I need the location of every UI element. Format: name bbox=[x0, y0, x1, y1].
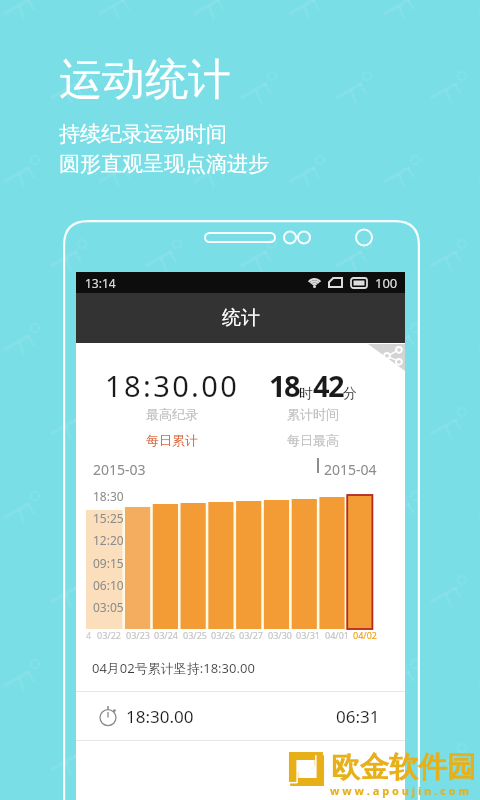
staticText: 03/23 bbox=[126, 629, 150, 641]
staticText: 15:25 bbox=[93, 510, 124, 526]
staticText: 04/01 bbox=[325, 629, 349, 641]
staticText: 03/27 bbox=[239, 629, 263, 641]
staticText: 累计时间 bbox=[287, 406, 339, 422]
staticText: 欧金软件园 bbox=[331, 749, 476, 786]
staticText: 2015-03 bbox=[93, 460, 146, 479]
staticText: 每日累计 bbox=[146, 432, 198, 448]
staticText: 13:14 bbox=[85, 275, 116, 291]
staticText: 运动统计 bbox=[59, 53, 231, 107]
staticText: 圆形直观呈现点滴进步 bbox=[59, 151, 269, 177]
staticText: 4 bbox=[86, 629, 92, 641]
staticText: 18 bbox=[269, 366, 299, 405]
staticText: 42 bbox=[313, 366, 343, 405]
staticText: 03/30 bbox=[268, 629, 292, 641]
staticText: 12:20 bbox=[93, 532, 124, 548]
staticText: 03/22 bbox=[97, 629, 121, 641]
staticText: 03/31 bbox=[296, 629, 320, 641]
staticText: 03/26 bbox=[211, 629, 235, 641]
staticText: 09:15 bbox=[93, 555, 124, 571]
staticText: 最高纪录 bbox=[146, 406, 198, 422]
staticText: 分 bbox=[343, 385, 357, 403]
staticText: 06:31 bbox=[336, 705, 380, 728]
button[interactable]: 18:30.00 bbox=[76, 692, 405, 740]
staticText: 每日最高 bbox=[287, 432, 339, 448]
staticText: 100 bbox=[375, 274, 398, 292]
staticText: 04/02 bbox=[353, 629, 377, 641]
button[interactable]: Share bbox=[368, 344, 405, 371]
staticText: 03/25 bbox=[183, 629, 207, 641]
staticText: w w w . a p o u j i n . c o m bbox=[330, 783, 470, 798]
staticText: 18:30 bbox=[93, 488, 124, 504]
staticText: 时 bbox=[299, 385, 313, 403]
staticText: 统计 bbox=[222, 306, 260, 330]
staticText: 2015-04 bbox=[324, 460, 377, 479]
staticText: 18:30.00 bbox=[105, 366, 240, 405]
staticText: 06:10 bbox=[93, 577, 124, 593]
staticText: 03:05 bbox=[93, 599, 124, 615]
staticText: 持续纪录运动时间 bbox=[59, 121, 227, 147]
staticText: 04月02号累计坚持:18:30.00 bbox=[92, 659, 255, 677]
staticText: 03/24 bbox=[154, 629, 178, 641]
staticText: 18:30.00 bbox=[126, 705, 194, 728]
